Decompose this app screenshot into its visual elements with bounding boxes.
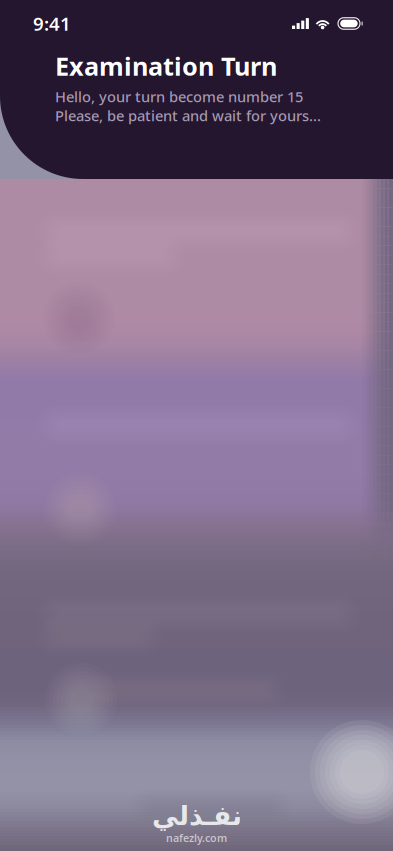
staticText: Hello, your turn become number 15 (55, 87, 303, 106)
staticText: نفـذلي (151, 801, 241, 831)
staticText: nafezly.com (166, 831, 227, 845)
staticText: 9:41 (33, 11, 71, 36)
staticText: Please, be patient and wait for yours... (55, 106, 321, 125)
staticText: Examination Turn (55, 49, 277, 83)
